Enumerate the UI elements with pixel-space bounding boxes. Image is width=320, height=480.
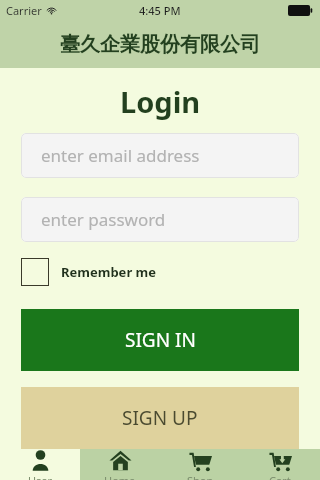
button[interactable]: Shop bbox=[160, 449, 240, 480]
staticText: enter email address bbox=[41, 144, 200, 167]
button[interactable]: Remember me bbox=[21, 258, 157, 286]
staticText: Home bbox=[104, 473, 136, 480]
button[interactable]: enter password bbox=[21, 197, 299, 242]
button[interactable]: SIGN IN bbox=[21, 309, 299, 371]
staticText: User bbox=[28, 473, 53, 480]
staticText: SIGN IN bbox=[125, 327, 196, 353]
staticText: Carrier bbox=[6, 3, 42, 18]
button[interactable]: User bbox=[0, 449, 80, 480]
staticText: Shop bbox=[187, 473, 214, 480]
staticText: Remember me bbox=[61, 263, 157, 281]
staticText: 4:45 PM bbox=[139, 3, 181, 18]
staticText: SIGN UP bbox=[122, 405, 198, 431]
staticText: Login bbox=[120, 82, 201, 121]
button[interactable]: enter email address bbox=[21, 133, 299, 178]
staticText: enter password bbox=[41, 208, 166, 231]
staticText: 臺久企業股份有限公司 bbox=[60, 32, 260, 57]
button[interactable]: Cart bbox=[240, 449, 320, 480]
button[interactable]: Home bbox=[80, 449, 160, 480]
button[interactable]: SIGN UP bbox=[21, 387, 299, 449]
staticText: Cart bbox=[269, 473, 291, 480]
